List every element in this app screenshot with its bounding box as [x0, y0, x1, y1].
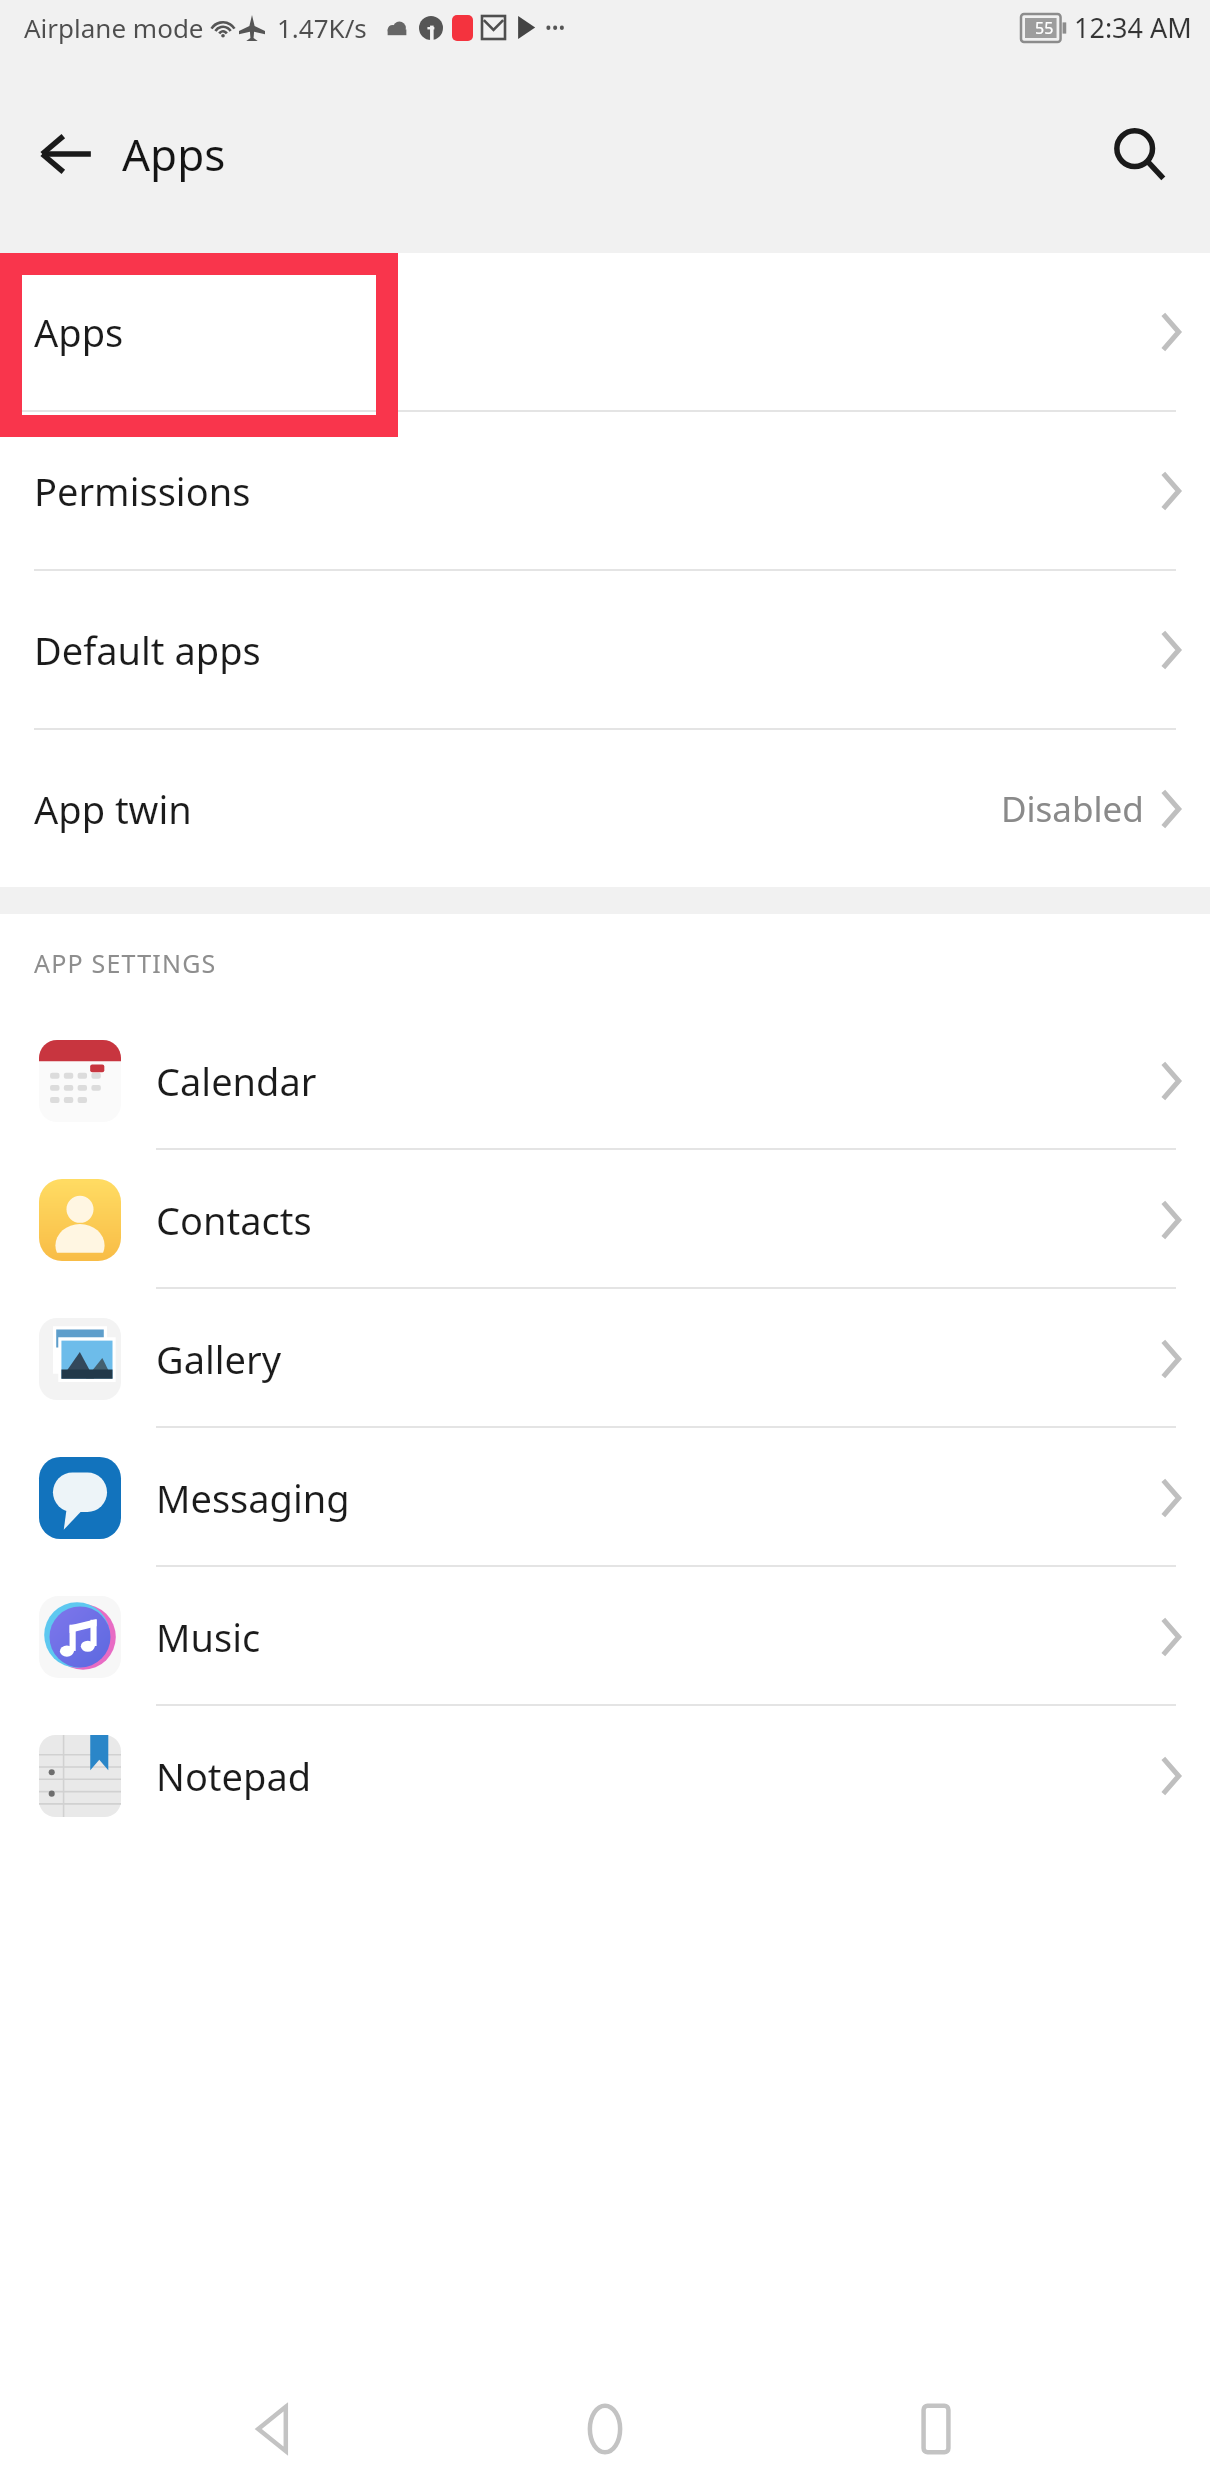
button[interactable]: Music [0, 1567, 1210, 1706]
staticText: Airplane mode [24, 10, 204, 45]
staticText: Apps [34, 306, 124, 358]
button[interactable]: Notepad [0, 1706, 1210, 1845]
button[interactable]: Permissions [0, 412, 1210, 569]
button[interactable]: Contacts [0, 1150, 1210, 1289]
staticText: Calendar [156, 1055, 317, 1107]
button[interactable]: App twin [0, 730, 1210, 887]
staticText: APP SETTINGS [34, 946, 217, 980]
staticText: Disabled [1001, 785, 1144, 833]
staticText: Messaging [156, 1472, 350, 1524]
button[interactable]: Home [549, 2373, 661, 2485]
staticText: Music [156, 1611, 261, 1663]
staticText: 1.47K/s [277, 10, 367, 45]
button[interactable]: Back [219, 2373, 331, 2485]
button[interactable]: Gallery [0, 1289, 1210, 1428]
button[interactable]: Calendar [0, 1011, 1210, 1150]
button[interactable]: Recent apps [880, 2373, 992, 2485]
button[interactable]: Messaging [0, 1428, 1210, 1567]
staticText: Gallery [156, 1333, 282, 1385]
staticText: 55 [1035, 17, 1054, 39]
staticText: ••• [545, 15, 566, 40]
staticText: Default apps [34, 624, 261, 676]
staticText: Permissions [34, 465, 251, 517]
staticText: Notepad [156, 1750, 312, 1802]
staticText: 12:34 AM [1074, 9, 1192, 46]
staticText: Apps [122, 124, 226, 184]
button[interactable]: Search [1094, 109, 1184, 199]
staticText: App twin [34, 783, 192, 835]
button[interactable]: Default apps [0, 571, 1210, 728]
button[interactable]: Apps [0, 253, 1210, 410]
staticText: Contacts [156, 1194, 312, 1246]
button[interactable]: Back [22, 110, 110, 198]
